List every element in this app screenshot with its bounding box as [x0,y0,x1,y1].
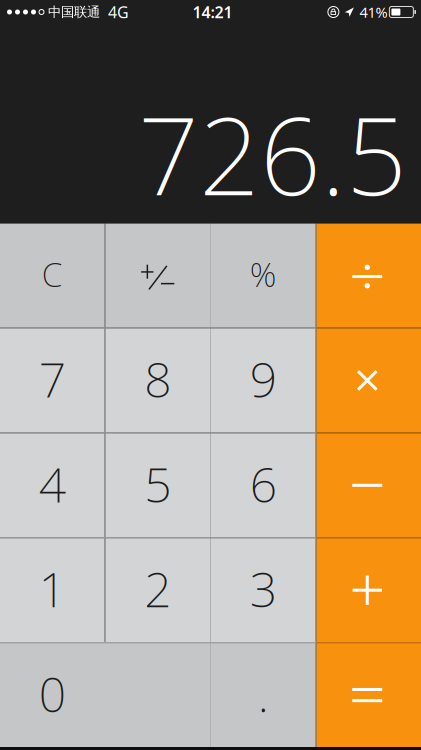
staticText: 2 [144,557,171,620]
staticText: . [258,662,269,725]
button[interactable]: 5 [105,433,210,537]
button[interactable]: 8 [105,328,210,432]
staticText: 3 [250,557,277,620]
button[interactable]: 7 [0,328,104,432]
staticText: 41% [359,2,387,22]
button[interactable]: Change sign [105,224,210,327]
staticText: 1 [39,557,66,620]
button[interactable]: 1 [0,538,104,642]
staticText: C [42,252,63,296]
staticText: 8 [144,347,171,411]
button[interactable]: 9 [211,328,315,432]
button[interactable]: C [0,224,104,327]
staticText: 5 [144,452,171,516]
staticText: 0 [39,662,66,725]
staticText: 7 [39,347,66,411]
staticText: 6 [250,452,277,516]
staticText: 4 [39,452,66,516]
button[interactable]: 3 [211,538,315,642]
button[interactable]: 0 [0,643,210,747]
staticText: 9 [250,347,277,411]
button[interactable]: % [211,224,315,327]
button[interactable]: Equals [316,643,421,747]
button[interactable]: . [211,643,315,747]
button[interactable]: Minus [316,433,421,537]
staticText: 726.5 [138,83,407,225]
button[interactable]: 4 [0,433,104,537]
button[interactable]: 6 [211,433,315,537]
button[interactable]: Divide [316,224,421,327]
button[interactable]: Plus [316,538,421,642]
staticText: % [250,252,277,296]
button[interactable]: 2 [105,538,210,642]
staticText: 中国联通 [48,4,100,20]
button[interactable]: Multiply [316,328,421,432]
staticText: 14:21 [192,1,232,23]
staticText: 4G [108,1,129,23]
